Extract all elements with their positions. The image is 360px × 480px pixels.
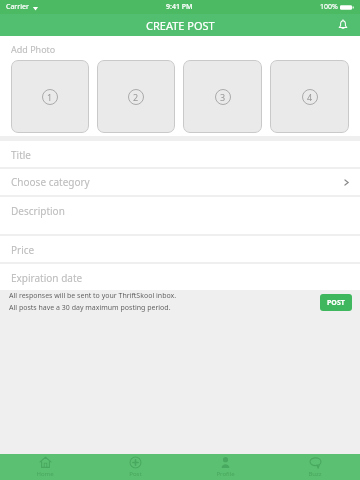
button[interactable]: Title — [0, 141, 360, 167]
staticText: 4 — [307, 91, 313, 103]
staticText: 3 — [220, 91, 226, 103]
staticText: CREATE POST — [146, 18, 215, 33]
staticText: 9:41 PM — [166, 2, 193, 12]
staticText: POST — [327, 298, 345, 308]
button[interactable]: POST — [320, 294, 352, 311]
staticText: Choose category — [11, 175, 90, 189]
button[interactable]: Home — [0, 454, 90, 480]
staticText: Title — [11, 148, 31, 162]
staticText: Profile — [216, 470, 235, 478]
button[interactable]: Choose category — [0, 169, 360, 195]
button[interactable]: Add photo 2 — [97, 60, 175, 133]
button[interactable]: Expiration date — [0, 264, 360, 290]
staticText: Carrier — [6, 2, 29, 12]
staticText: 1 — [47, 91, 53, 103]
button[interactable]: Add photo 4 — [270, 60, 349, 133]
staticText: Expiration date — [11, 271, 83, 285]
staticText: All responses will be sent to your Thrif… — [9, 291, 177, 301]
button[interactable]: Buzz — [270, 454, 360, 480]
button[interactable]: Description — [0, 197, 360, 234]
staticText: Description — [11, 204, 65, 218]
button[interactable]: Price — [0, 236, 360, 262]
button[interactable]: Notifications — [334, 16, 352, 34]
button[interactable]: Post — [90, 454, 180, 480]
staticText: Buzz — [308, 470, 322, 478]
staticText: 2 — [133, 91, 139, 103]
staticText: Add Photo — [11, 43, 56, 55]
button[interactable]: Profile — [180, 454, 270, 480]
button[interactable]: Add photo 1 — [11, 60, 89, 133]
button[interactable]: Add photo 3 — [183, 60, 262, 133]
staticText: All posts have a 30 day maximum posting … — [9, 303, 171, 313]
staticText: Price — [11, 243, 35, 257]
staticText: 100% — [320, 2, 338, 12]
staticText: Post — [129, 470, 142, 478]
staticText: Home — [36, 470, 54, 478]
